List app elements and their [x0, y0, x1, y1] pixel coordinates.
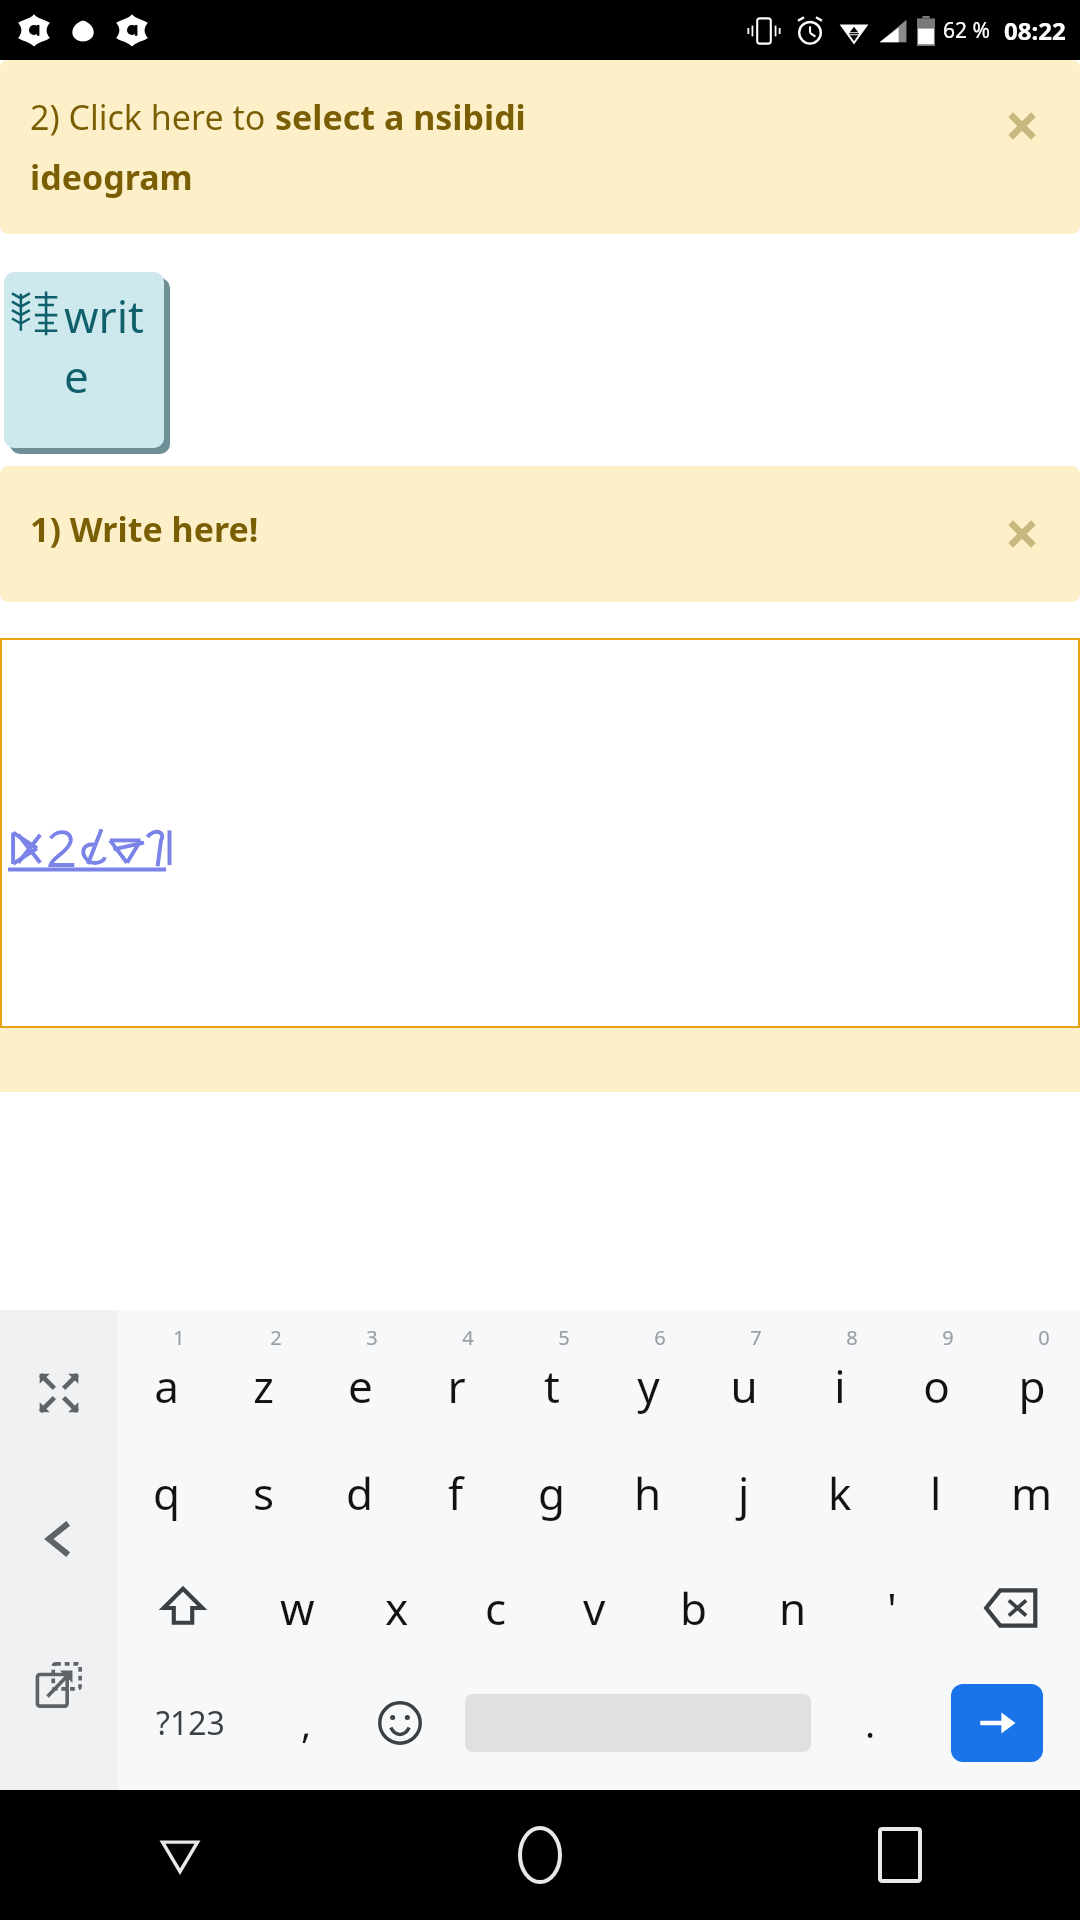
staticText: 6 [654, 1324, 666, 1351]
button[interactable]: 7 [696, 1320, 792, 1435]
button[interactable]: 1) Write here! [0, 466, 1080, 602]
button[interactable]: Home [360, 1790, 720, 1920]
staticText: b [680, 1578, 708, 1638]
staticText: 0 [1038, 1324, 1050, 1351]
staticText: 8 [846, 1324, 858, 1351]
staticText: 2 [270, 1324, 282, 1351]
staticText: q [153, 1463, 181, 1523]
staticText: r [447, 1356, 466, 1416]
staticText: o [923, 1356, 950, 1416]
staticText: s [253, 1463, 275, 1523]
staticText: p [1018, 1356, 1046, 1416]
staticText: e [348, 1356, 373, 1416]
button[interactable]: 9 [888, 1320, 984, 1435]
button[interactable]: Dismiss [994, 98, 1050, 154]
staticText: t [544, 1356, 560, 1416]
staticText: 3 [366, 1324, 378, 1351]
button[interactable]: h [600, 1435, 696, 1550]
button[interactable]: n [743, 1550, 842, 1665]
staticText: a [154, 1356, 179, 1416]
staticText: ?123 [156, 1701, 225, 1745]
staticText: 1 [173, 1324, 185, 1351]
button[interactable]: b [644, 1550, 743, 1665]
button[interactable]: Enter [914, 1665, 1080, 1780]
staticText: 4 [462, 1324, 474, 1351]
button[interactable]: Back [16, 1496, 102, 1582]
staticText: ' [887, 1578, 897, 1638]
button[interactable]: 8 [792, 1320, 888, 1435]
staticText: f [448, 1463, 464, 1523]
button[interactable]: ?123 [118, 1665, 262, 1780]
button[interactable]: write [4, 272, 164, 448]
button[interactable]: Float keyboard [16, 1642, 102, 1728]
staticText: u [730, 1356, 758, 1416]
button[interactable]: f [408, 1435, 504, 1550]
staticText: . [865, 1697, 876, 1749]
staticText: l [930, 1463, 942, 1523]
staticText: x [385, 1578, 409, 1638]
button[interactable]: Expand keyboard [16, 1350, 102, 1436]
staticText: 62 % [943, 16, 990, 45]
button[interactable]: Emoji [350, 1665, 450, 1780]
button[interactable]: 5 [504, 1320, 600, 1435]
button[interactable]: d [312, 1435, 408, 1550]
button[interactable]: 1 [118, 1320, 215, 1435]
staticText: write [64, 286, 164, 406]
button[interactable]: 4 [408, 1320, 504, 1435]
button[interactable]: q [118, 1435, 215, 1550]
staticText: 5 [558, 1324, 570, 1351]
button[interactable] [0, 638, 1080, 1028]
staticText: y [637, 1356, 660, 1416]
staticText: i [834, 1356, 846, 1416]
staticText: 1) Write here! [30, 506, 259, 552]
staticText: c [485, 1578, 507, 1638]
staticText: z [253, 1356, 274, 1416]
button[interactable]: j [696, 1435, 792, 1550]
button[interactable]: 3 [312, 1320, 408, 1435]
button[interactable]: l [888, 1435, 984, 1550]
button[interactable]: 2 [215, 1320, 312, 1435]
button[interactable]: Backspace [941, 1550, 1080, 1665]
button[interactable]: m [984, 1435, 1080, 1550]
staticText: ideogram [30, 154, 193, 200]
button[interactable]: Recents [720, 1790, 1080, 1920]
button[interactable]: Space [450, 1665, 826, 1780]
staticText: 7 [750, 1324, 762, 1351]
button[interactable]: 2) Click here to [0, 60, 1080, 234]
staticText: m [1011, 1463, 1053, 1523]
staticText: d [346, 1463, 374, 1523]
button[interactable]: 6 [600, 1320, 696, 1435]
button[interactable]: x [347, 1550, 446, 1665]
staticText: 08:22 [1004, 14, 1066, 47]
button[interactable]: c [446, 1550, 545, 1665]
staticText: j [738, 1463, 750, 1523]
staticText: k [828, 1463, 852, 1523]
staticText: select a nsibidi [275, 94, 526, 140]
button[interactable]: Dismiss [994, 506, 1050, 562]
button[interactable]: ' [842, 1550, 941, 1665]
staticText: 2) Click here to [30, 94, 275, 140]
button[interactable]: 0 [984, 1320, 1080, 1435]
staticText: v [583, 1578, 606, 1638]
button[interactable]: w [248, 1550, 347, 1665]
staticText: n [779, 1578, 807, 1638]
staticText: h [634, 1463, 662, 1523]
button[interactable]: k [792, 1435, 888, 1550]
staticText: w [280, 1578, 315, 1638]
button[interactable]: s [215, 1435, 312, 1550]
staticText: , [301, 1697, 312, 1749]
button[interactable]: g [504, 1435, 600, 1550]
button[interactable]: . [826, 1665, 914, 1780]
button[interactable]: , [262, 1665, 350, 1780]
button[interactable]: v [545, 1550, 644, 1665]
staticText: 9 [942, 1324, 954, 1351]
button[interactable]: Shift [118, 1550, 248, 1665]
button[interactable]: Back [0, 1790, 360, 1920]
staticText: g [538, 1463, 566, 1523]
